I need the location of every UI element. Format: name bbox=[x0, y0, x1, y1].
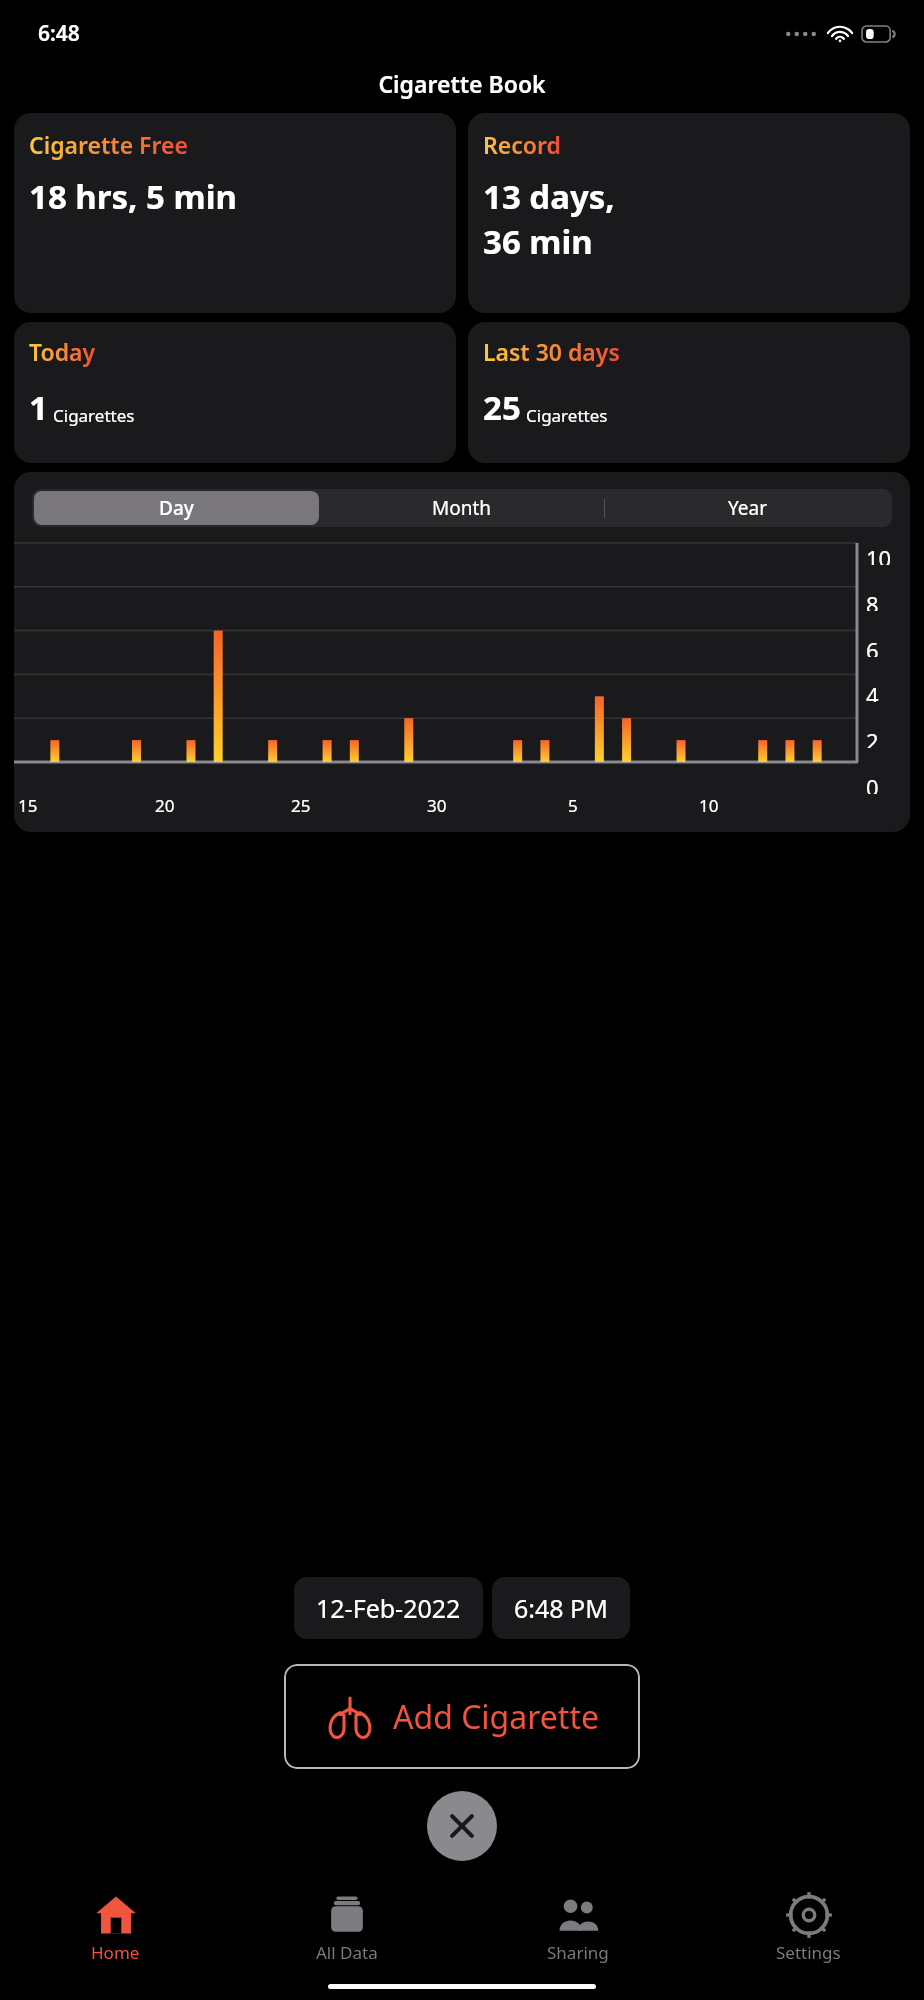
staticText: Month bbox=[432, 495, 492, 521]
staticText: 13 days, bbox=[483, 174, 615, 219]
staticText: Settings bbox=[776, 1941, 841, 1964]
staticText: 2 bbox=[866, 726, 879, 748]
staticText: 15 bbox=[18, 794, 38, 817]
staticText: 25 bbox=[483, 385, 521, 430]
button[interactable]: Cigarette Free bbox=[14, 113, 456, 313]
button[interactable]: All Data bbox=[231, 1889, 462, 1964]
staticText: All Data bbox=[316, 1941, 378, 1964]
button[interactable]: Year bbox=[605, 491, 890, 525]
staticText: Year bbox=[728, 495, 768, 521]
staticText: 6:48 bbox=[38, 19, 80, 48]
staticText: 8 bbox=[866, 589, 879, 611]
staticText: 0 bbox=[866, 772, 879, 794]
button[interactable]: Home bbox=[0, 1889, 231, 1964]
staticText: 25 bbox=[291, 794, 311, 817]
button[interactable]: Close bbox=[427, 1791, 497, 1861]
button[interactable]: Settings bbox=[693, 1889, 924, 1964]
staticText: 6 bbox=[866, 635, 879, 657]
staticText: Cigarette Book bbox=[0, 68, 924, 99]
staticText: Record bbox=[483, 129, 561, 160]
button[interactable]: Last 30 days bbox=[468, 322, 910, 463]
staticText: 18 hrs, 5 min bbox=[29, 174, 238, 219]
button[interactable]: 12-Feb-2022 bbox=[294, 1577, 483, 1639]
staticText: 30 bbox=[427, 794, 447, 817]
staticText: Today bbox=[29, 336, 96, 367]
button[interactable]: 6:48 PM bbox=[492, 1577, 630, 1639]
staticText: 10 bbox=[699, 794, 719, 817]
staticText: 10 bbox=[866, 543, 892, 565]
button[interactable]: Month bbox=[319, 491, 604, 525]
staticText: Sharing bbox=[547, 1941, 609, 1964]
staticText: 1 bbox=[29, 385, 48, 430]
staticText: 20 bbox=[155, 794, 175, 817]
button[interactable]: Sharing bbox=[462, 1889, 693, 1964]
staticText: Last 30 days bbox=[483, 336, 620, 367]
button[interactable]: Day bbox=[34, 491, 319, 525]
staticText: Add Cigarette bbox=[393, 1695, 600, 1739]
staticText: 36 min bbox=[483, 219, 593, 264]
staticText: Cigarettes bbox=[53, 404, 135, 427]
staticText: Day bbox=[159, 495, 194, 521]
staticText: 6:48 PM bbox=[514, 1591, 608, 1625]
staticText: Cigarette Free bbox=[29, 129, 188, 160]
staticText: 12-Feb-2022 bbox=[316, 1591, 461, 1625]
staticText: Cigarettes bbox=[526, 404, 608, 427]
button[interactable]: Today bbox=[14, 322, 456, 463]
staticText: Home bbox=[91, 1941, 140, 1964]
button[interactable]: Add Cigarette bbox=[284, 1664, 640, 1769]
button[interactable]: Record bbox=[468, 113, 910, 313]
staticText: 4 bbox=[866, 680, 879, 702]
staticText: 5 bbox=[568, 794, 578, 817]
